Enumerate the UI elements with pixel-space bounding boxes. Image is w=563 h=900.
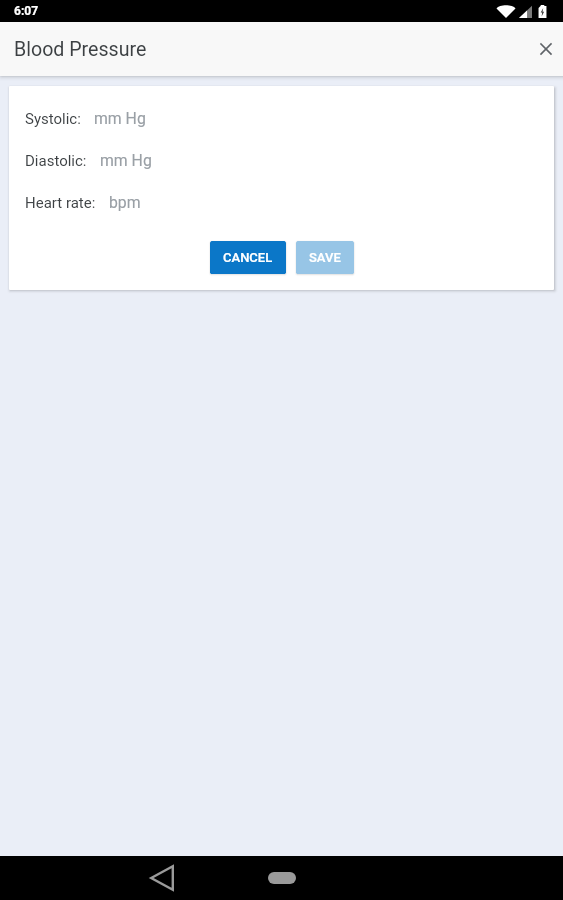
staticText: mm Hg [100, 151, 152, 170]
button[interactable]: CANCEL [210, 241, 286, 274]
button[interactable]: mm Hg [100, 151, 538, 170]
staticText: CANCEL [223, 250, 273, 265]
button[interactable]: bpm [109, 193, 538, 212]
staticText: Systolic: [25, 110, 81, 128]
button[interactable]: mm Hg [94, 109, 538, 128]
staticText: Heart rate: [25, 194, 96, 212]
button[interactable]: Home [260, 856, 304, 900]
staticText: Blood Pressure [14, 38, 147, 61]
button[interactable]: Back [140, 856, 184, 900]
staticText: SAVE [309, 250, 341, 265]
button[interactable]: SAVE [296, 241, 354, 274]
staticText: 6:07 [14, 4, 39, 18]
staticText: bpm [109, 193, 141, 212]
staticText: mm Hg [94, 109, 146, 128]
staticText: Diastolic: [25, 152, 87, 170]
button[interactable]: Close [529, 32, 563, 66]
